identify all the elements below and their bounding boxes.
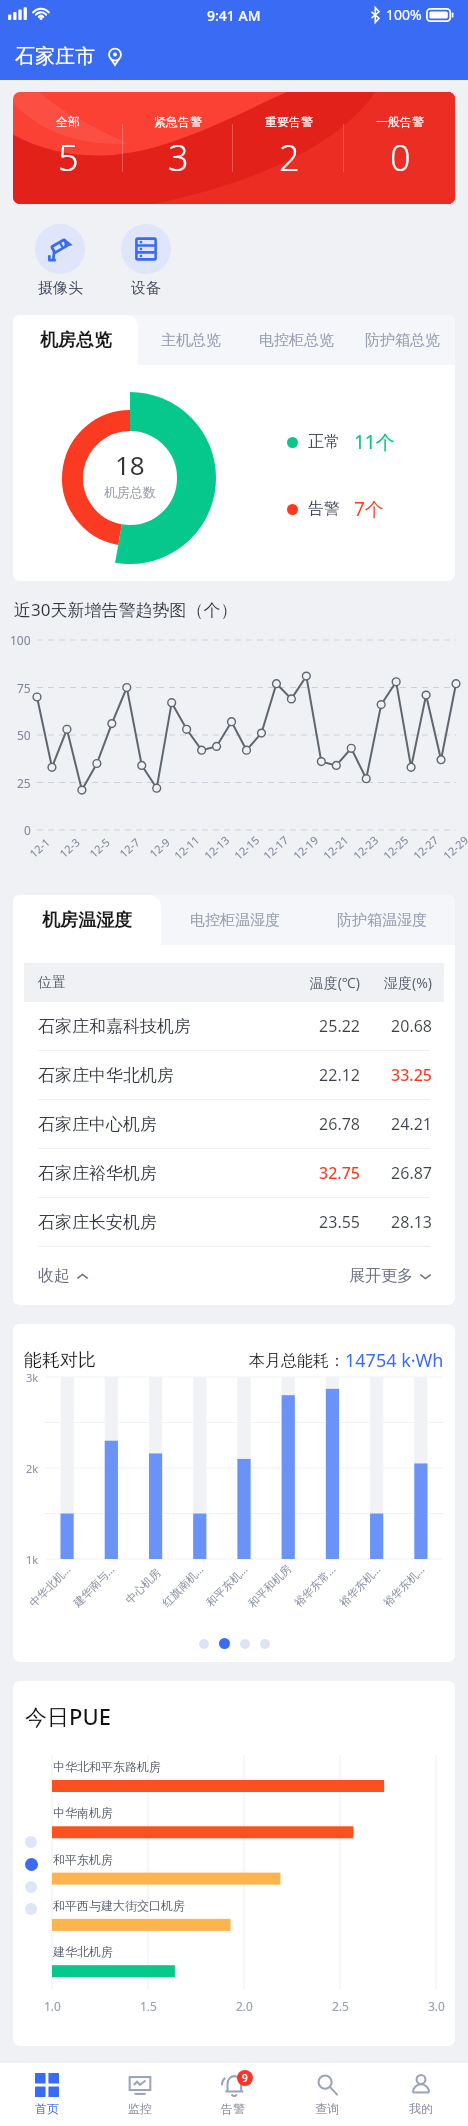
button[interactable]: 9 xyxy=(186,2063,280,2126)
button[interactable] xyxy=(25,1881,37,1893)
button[interactable] xyxy=(25,1858,38,1871)
staticText: 机房总数 xyxy=(104,484,156,500)
staticText: 20.68 xyxy=(360,1015,432,1037)
button[interactable]: 我的 xyxy=(374,2063,468,2126)
staticText: 12-29 xyxy=(440,832,468,863)
staticText: 收起 xyxy=(38,1266,70,1286)
staticText: 近30天新增告警趋势图（个） xyxy=(14,598,238,621)
staticText: 12-7 xyxy=(116,834,143,861)
button[interactable]: 设备 xyxy=(121,224,171,298)
staticText: 石家庄和嘉科技机房 xyxy=(38,1016,278,1037)
button[interactable] xyxy=(199,1639,209,1649)
button[interactable]: 一般告警 xyxy=(344,92,455,204)
button[interactable]: 主机总览 xyxy=(138,315,243,365)
staticText: 26.78 xyxy=(278,1113,360,1135)
staticText: 32.75 xyxy=(278,1162,360,1184)
button[interactable]: 摄像头 xyxy=(35,224,85,298)
staticText: 100% xyxy=(386,5,422,24)
staticText: 3 xyxy=(168,133,189,182)
button[interactable] xyxy=(25,1836,37,1848)
staticText: 裕华东机… xyxy=(379,1561,428,1610)
staticText: 0 xyxy=(24,822,31,838)
button[interactable]: 防护箱温湿度 xyxy=(308,895,455,945)
button[interactable] xyxy=(25,1903,37,1915)
staticText: 3.0 xyxy=(428,1998,445,2014)
button[interactable]: 全部 xyxy=(13,92,455,204)
staticText: 石家庄长安机房 xyxy=(38,1212,278,1233)
button[interactable]: 机房温湿度 xyxy=(13,895,161,945)
button[interactable]: 石家庄中心机房 xyxy=(13,1100,455,1148)
staticText: 电控柜总览 xyxy=(259,331,334,350)
button[interactable]: 电控柜温湿度 xyxy=(161,895,308,945)
button[interactable]: 全部 xyxy=(13,92,123,204)
staticText: 9:41 AM xyxy=(207,6,261,25)
staticText: 机房温湿度 xyxy=(42,909,132,932)
staticText: 石家庄裕华机房 xyxy=(38,1163,278,1184)
staticText: 石家庄中华北机房 xyxy=(38,1065,278,1086)
staticText: 25 xyxy=(17,775,31,791)
staticText: 主机总览 xyxy=(161,331,221,350)
button[interactable]: 防护箱总览 xyxy=(349,315,455,365)
button[interactable]: 石家庄中华北机房 xyxy=(13,1051,455,1099)
staticText: 机房总览 xyxy=(40,329,112,352)
staticText: 25.22 xyxy=(278,1015,360,1037)
button[interactable]: 收起 xyxy=(38,1266,89,1286)
staticText: 1k xyxy=(26,1552,39,1567)
staticText: 和平西与建大街交口机房 xyxy=(53,1898,185,1913)
staticText: 首页 xyxy=(35,2101,59,2116)
button[interactable] xyxy=(240,1639,250,1649)
button[interactable]: 紧急告警 xyxy=(123,92,233,204)
staticText: 展开更多 xyxy=(349,1266,413,1286)
staticText: 5 xyxy=(58,133,79,182)
staticText: 位置 xyxy=(38,974,276,992)
staticText: 裕华东机… xyxy=(335,1561,384,1610)
staticText: 12-13 xyxy=(201,832,232,863)
staticText: 湿度(%) xyxy=(360,973,432,992)
staticText: 26.87 xyxy=(360,1162,432,1184)
button[interactable]: 查询 xyxy=(280,2063,374,2126)
button[interactable]: 机房总览 xyxy=(13,315,138,365)
staticText: 建华北机房 xyxy=(53,1944,113,1959)
staticText: 告警 xyxy=(308,499,340,519)
staticText: 温度(℃) xyxy=(276,973,360,992)
staticText: 今日PUE xyxy=(25,1701,111,1731)
staticText: 12-19 xyxy=(290,832,321,863)
button[interactable]: 电控柜总览 xyxy=(243,315,349,365)
button[interactable]: 石家庄长安机房 xyxy=(13,1198,455,1246)
button[interactable]: 石家庄市 xyxy=(0,40,468,80)
staticText: 和平东机房 xyxy=(53,1852,113,1867)
staticText: 12-21 xyxy=(320,832,351,863)
staticText: 12-23 xyxy=(350,832,381,863)
staticText: 能耗对比 xyxy=(24,1349,96,1372)
staticText: 石家庄市 xyxy=(15,44,95,69)
button[interactable] xyxy=(260,1639,270,1649)
staticText: 12-17 xyxy=(260,832,291,863)
staticText: 24.21 xyxy=(360,1113,432,1135)
staticText: 2 xyxy=(279,133,300,182)
button[interactable]: 监控 xyxy=(93,2063,186,2126)
staticText: 22.12 xyxy=(278,1064,360,1086)
button[interactable]: 石家庄裕华机房 xyxy=(13,1149,455,1197)
staticText: 2.0 xyxy=(236,1998,253,2014)
button[interactable] xyxy=(219,1638,230,1649)
staticText: 12-27 xyxy=(410,832,441,863)
staticText: 红旗南机… xyxy=(158,1561,207,1610)
staticText: 12-25 xyxy=(380,832,411,863)
staticText: 2k xyxy=(26,1461,39,1476)
staticText: 本月总能耗： xyxy=(249,1351,345,1371)
button[interactable]: 重要告警 xyxy=(233,92,344,204)
button[interactable]: 展开更多 xyxy=(349,1266,432,1286)
staticText: 防护箱温湿度 xyxy=(337,911,427,930)
staticText: 查询 xyxy=(315,2101,339,2116)
staticText: 23.55 xyxy=(278,1211,360,1233)
button[interactable]: 告警 xyxy=(287,496,384,522)
staticText: 12-15 xyxy=(231,832,262,863)
staticText: 和平和机房 xyxy=(245,1562,294,1610)
staticText: 中心机房 xyxy=(122,1565,163,1606)
button[interactable]: 石家庄和嘉科技机房 xyxy=(13,1002,455,1050)
button[interactable]: 正常 xyxy=(287,429,395,455)
button[interactable]: 首页 xyxy=(0,2063,93,2126)
staticText: 11个 xyxy=(354,429,395,455)
staticText: 50 xyxy=(17,727,31,743)
staticText: 1.5 xyxy=(140,1998,157,2014)
